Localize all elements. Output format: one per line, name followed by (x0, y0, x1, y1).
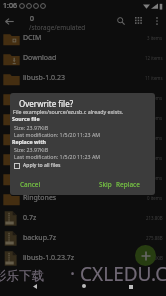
staticText: Pictures (23, 153, 147, 163)
staticText: backup.7z (23, 233, 146, 243)
staticText: 0 items (147, 195, 163, 201)
staticText: 2 items (147, 155, 163, 161)
button[interactable]: Ringtones (0, 188, 166, 208)
staticText: Overwrite file? (19, 98, 74, 109)
button[interactable]: Back (26, 278, 43, 295)
button[interactable]: Grid view (130, 12, 148, 30)
staticText: 3 items (147, 35, 163, 41)
staticText: Podcasts (23, 173, 147, 183)
button[interactable]: Add (135, 245, 156, 266)
staticText: libusb-1.0.23 (23, 73, 145, 83)
button[interactable]: Podcasts (0, 168, 166, 188)
staticText: 275.88B (146, 235, 163, 241)
staticText: Download (23, 53, 145, 63)
staticText: Replace with (12, 138, 46, 145)
button[interactable]: backup.7z (0, 228, 166, 248)
staticText: 92.86KiB (145, 255, 163, 261)
button[interactable]: Search (112, 12, 130, 30)
staticText: Cancel (20, 180, 41, 189)
button[interactable]: Back (0, 12, 18, 30)
staticText: Music (23, 113, 147, 123)
staticText: 0.7z (23, 213, 146, 223)
staticText: Skip (99, 180, 112, 189)
staticText: /storage/emulated (29, 23, 86, 32)
staticText: Size: 23.97KiB (14, 146, 49, 153)
staticText: · CXLEDU.COM (70, 261, 166, 287)
button[interactable]: Music (0, 108, 166, 128)
button[interactable]: More options (148, 12, 166, 30)
button[interactable]: Skip (96, 178, 115, 191)
button[interactable]: Home (75, 277, 92, 294)
staticText: Ringtones (23, 193, 147, 203)
staticText: Notifications (23, 133, 147, 143)
staticText: 影乐下载 (0, 268, 45, 284)
staticText: 0 items (147, 175, 163, 181)
staticText: DCIM (23, 33, 147, 43)
staticText: Size: 23.97KiB (14, 124, 49, 131)
button[interactable]: Cancel (17, 178, 44, 191)
staticText: 0 items (147, 95, 163, 101)
staticText: Replace (116, 180, 140, 189)
staticText: 0 (30, 14, 34, 23)
staticText: 11 items (145, 75, 163, 81)
button[interactable]: Pictures (0, 148, 166, 168)
staticText: 0 items (147, 135, 163, 141)
button[interactable]: Apply to all files (13, 161, 62, 170)
button[interactable]: libusb-1.0.23 (0, 68, 166, 88)
staticText: 213.80B (146, 215, 163, 221)
button[interactable]: Notifications (0, 128, 166, 148)
staticText: 1:06 (3, 1, 17, 11)
button[interactable]: Download (0, 48, 166, 68)
staticText: Source file (12, 115, 40, 122)
staticText: 12 items (145, 55, 163, 61)
staticText: Last modification: 1/5/20 11:23 AM (14, 131, 101, 138)
button[interactable]: Movies (0, 88, 166, 108)
button[interactable]: libusb-1.0.23.7z (0, 248, 166, 268)
button[interactable]: DCIM (0, 28, 166, 48)
staticText: Movies (23, 93, 147, 103)
staticText: libusb-1.0.23.7z (23, 253, 145, 263)
staticText: File examples/source/ezusb.c already exi… (13, 108, 124, 115)
button[interactable]: 0.7z (0, 208, 166, 228)
button[interactable]: Recents (122, 278, 139, 295)
staticText: Apply to all files (23, 162, 61, 169)
staticText: 0 items (147, 115, 163, 121)
staticText: Last modification: 1/5/20 11:23 AM (14, 153, 101, 160)
button[interactable]: Replace (113, 178, 143, 191)
